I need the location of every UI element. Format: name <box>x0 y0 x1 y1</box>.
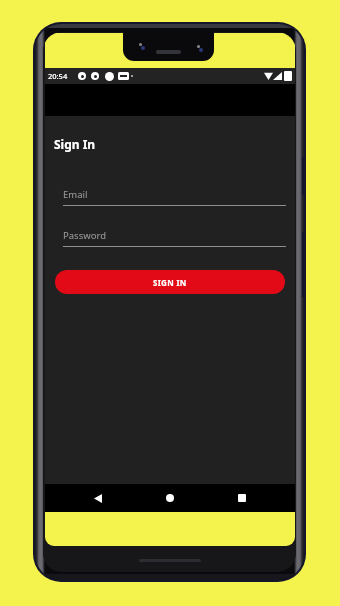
staticText: Email <box>63 188 88 201</box>
staticText: 20:54 <box>48 71 68 81</box>
button[interactable]: Back <box>80 484 116 512</box>
button[interactable]: Email <box>63 188 286 210</box>
button[interactable]: Password <box>63 229 286 251</box>
staticText: SIGN IN <box>153 277 187 288</box>
button[interactable]: Home <box>152 484 188 512</box>
button[interactable]: SIGN IN <box>55 270 285 294</box>
button[interactable]: Recent apps <box>224 484 260 512</box>
staticText: Sign In <box>54 136 96 152</box>
staticText: Password <box>63 229 106 242</box>
